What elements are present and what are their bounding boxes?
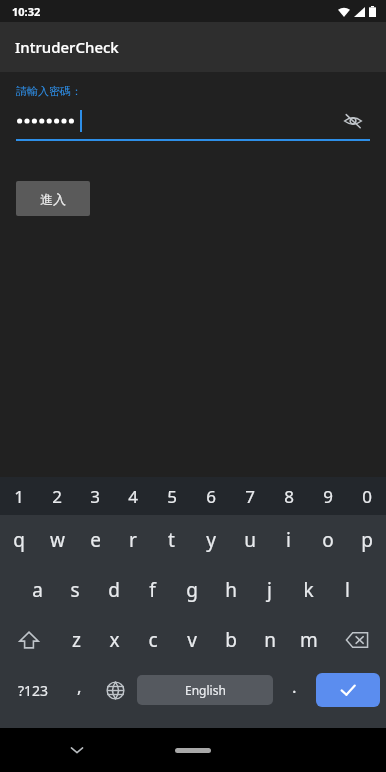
button[interactable]: x bbox=[95, 615, 133, 665]
staticText: k bbox=[303, 577, 314, 603]
button[interactable]: r bbox=[114, 515, 152, 565]
button[interactable]: a bbox=[18, 565, 56, 615]
staticText: e bbox=[90, 527, 101, 553]
button[interactable]: , bbox=[61, 668, 97, 712]
button[interactable]: 2 bbox=[38, 477, 76, 515]
staticText: y bbox=[206, 527, 216, 553]
button[interactable]: m bbox=[289, 615, 328, 665]
button[interactable]: Shift bbox=[0, 615, 57, 665]
button[interactable]: p bbox=[347, 515, 386, 565]
staticText: l bbox=[345, 577, 350, 603]
staticText: r bbox=[129, 527, 137, 553]
button[interactable]: . bbox=[276, 668, 313, 712]
button[interactable]: 1 bbox=[0, 477, 38, 515]
button[interactable]: 6 bbox=[191, 477, 230, 515]
staticText: w bbox=[50, 527, 65, 553]
staticText: m bbox=[300, 627, 318, 653]
button[interactable]: Hide password bbox=[0, 106, 386, 136]
button[interactable]: k bbox=[289, 565, 328, 615]
staticText: 請輸入密碼： bbox=[16, 84, 82, 98]
button[interactable]: Home bbox=[175, 748, 211, 753]
button[interactable]: 4 bbox=[114, 477, 152, 515]
staticText: a bbox=[32, 577, 43, 603]
button[interactable]: q bbox=[0, 515, 38, 565]
button[interactable]: y bbox=[191, 515, 230, 565]
button[interactable]: f bbox=[133, 565, 172, 615]
button[interactable]: 7 bbox=[230, 477, 269, 515]
button[interactable]: English bbox=[137, 675, 273, 705]
button[interactable]: n bbox=[250, 615, 289, 665]
staticText: c bbox=[148, 627, 158, 653]
button[interactable]: 0 bbox=[347, 477, 386, 515]
button[interactable]: Backspace bbox=[328, 615, 386, 665]
staticText: English bbox=[185, 682, 226, 698]
button[interactable]: w bbox=[38, 515, 76, 565]
staticText: x bbox=[109, 627, 120, 653]
button[interactable]: d bbox=[94, 565, 133, 615]
staticText: 8 bbox=[284, 485, 294, 508]
button[interactable]: 進入 bbox=[16, 181, 90, 216]
button[interactable]: e bbox=[76, 515, 114, 565]
button[interactable]: 9 bbox=[308, 477, 347, 515]
staticText: 5 bbox=[167, 485, 177, 508]
button[interactable]: s bbox=[56, 565, 94, 615]
staticText: d bbox=[108, 577, 120, 603]
button[interactable]: 8 bbox=[269, 477, 308, 515]
staticText: h bbox=[225, 577, 237, 603]
staticText: 10:32 bbox=[12, 4, 41, 19]
button[interactable]: v bbox=[172, 615, 211, 665]
staticText: b bbox=[225, 627, 237, 653]
button[interactable]: z bbox=[57, 615, 95, 665]
button[interactable]: Enter bbox=[316, 673, 380, 707]
staticText: t bbox=[168, 527, 175, 553]
button[interactable]: o bbox=[308, 515, 347, 565]
staticText: 4 bbox=[128, 485, 138, 508]
staticText: u bbox=[244, 527, 256, 553]
button[interactable]: t bbox=[152, 515, 191, 565]
staticText: n bbox=[264, 627, 276, 653]
staticText: p bbox=[361, 527, 373, 553]
staticText: IntruderCheck bbox=[15, 37, 119, 57]
staticText: o bbox=[322, 527, 334, 553]
staticText: j bbox=[267, 577, 272, 603]
staticText: , bbox=[77, 675, 82, 698]
staticText: q bbox=[13, 527, 25, 553]
button[interactable]: Hide password bbox=[340, 108, 366, 134]
staticText: g bbox=[186, 577, 198, 603]
staticText: f bbox=[149, 577, 156, 603]
button[interactable]: j bbox=[250, 565, 289, 615]
button[interactable]: h bbox=[211, 565, 250, 615]
staticText: ?123 bbox=[18, 681, 49, 700]
staticText: 6 bbox=[206, 485, 216, 508]
button[interactable]: b bbox=[211, 615, 250, 665]
button[interactable]: Change language bbox=[97, 668, 134, 712]
button[interactable]: l bbox=[328, 565, 367, 615]
button[interactable]: u bbox=[230, 515, 269, 565]
button[interactable]: Hide keyboard bbox=[62, 735, 92, 765]
staticText: 2 bbox=[52, 485, 62, 508]
staticText: v bbox=[187, 627, 197, 653]
staticText: s bbox=[70, 577, 80, 603]
staticText: 9 bbox=[323, 485, 333, 508]
staticText: z bbox=[72, 627, 81, 653]
staticText: . bbox=[292, 675, 297, 698]
staticText: 1 bbox=[14, 485, 24, 508]
button[interactable]: 3 bbox=[76, 477, 114, 515]
staticText: 3 bbox=[90, 485, 100, 508]
staticText: i bbox=[286, 527, 291, 553]
button[interactable]: c bbox=[133, 615, 172, 665]
button[interactable]: ?123 bbox=[6, 668, 61, 712]
staticText: 0 bbox=[362, 485, 372, 508]
button[interactable]: i bbox=[269, 515, 308, 565]
button[interactable]: g bbox=[172, 565, 211, 615]
staticText: 7 bbox=[245, 485, 255, 508]
button[interactable]: 5 bbox=[152, 477, 191, 515]
staticText: 進入 bbox=[40, 191, 66, 207]
